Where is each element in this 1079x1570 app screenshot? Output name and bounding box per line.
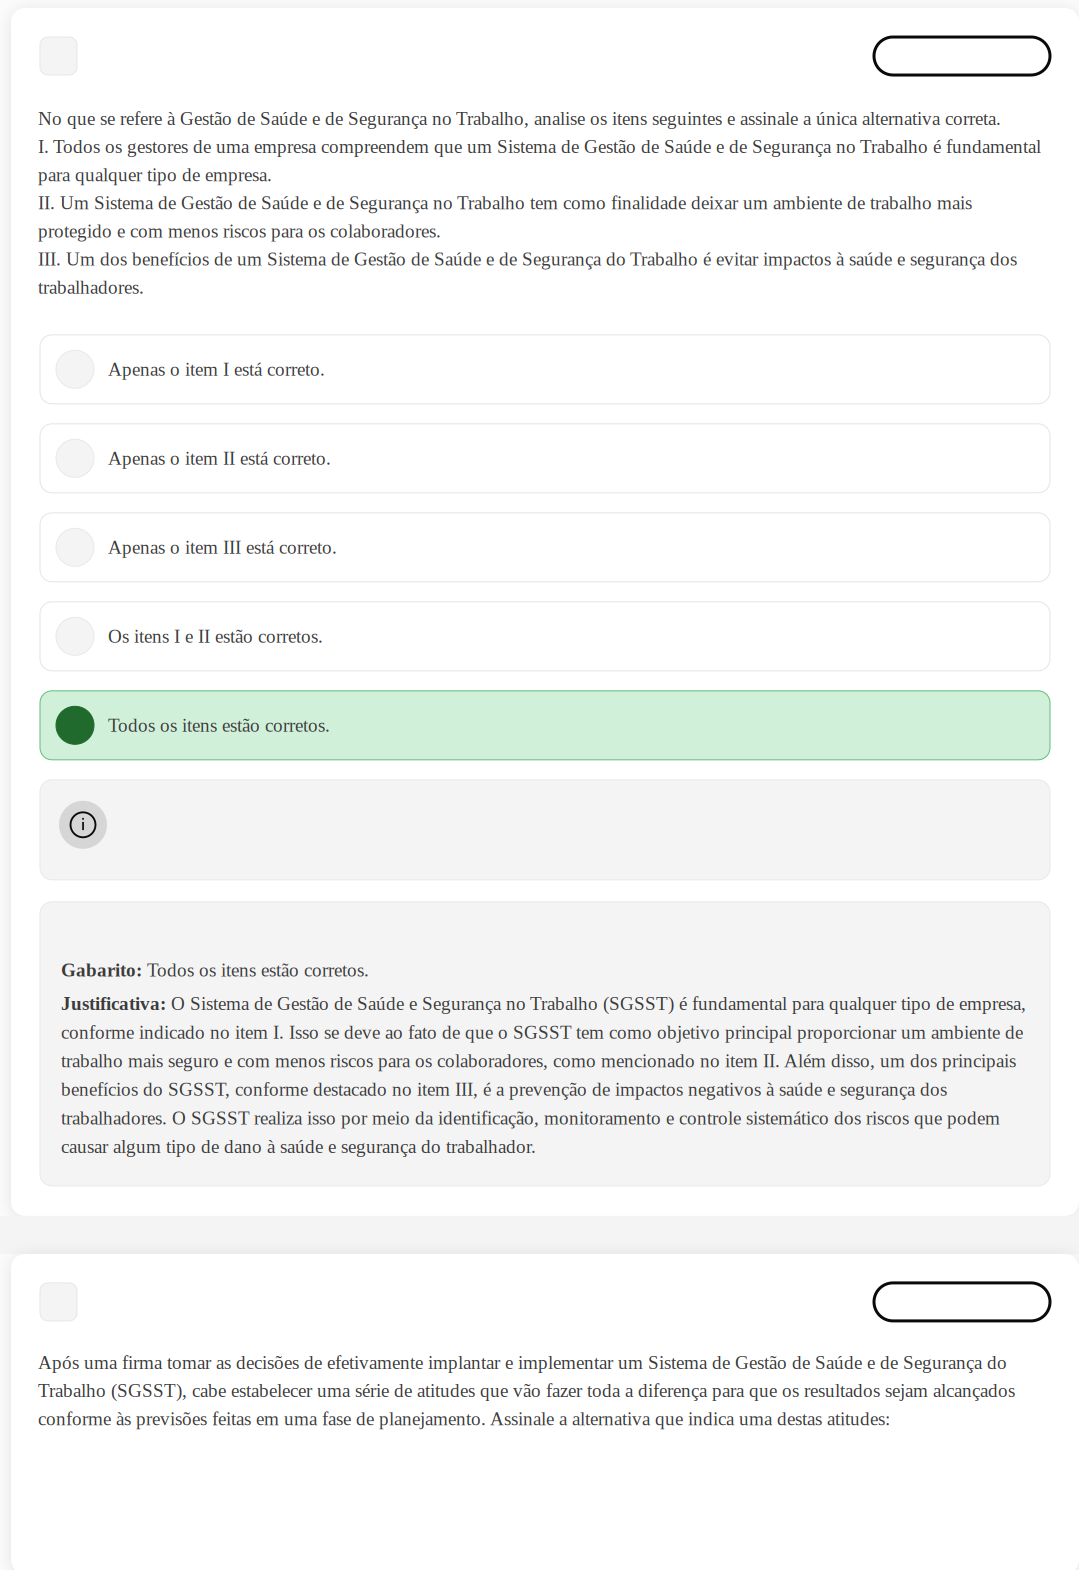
staticText: Apenas o item II está correto.: [108, 448, 331, 469]
staticText: Após uma firma tomar as decisões de efet…: [38, 1352, 1015, 1429]
staticText: Gabarito: Todos os itens estão corretos.: [61, 960, 369, 980]
button[interactable]: Apenas o item I está correto.: [40, 335, 1050, 404]
staticText: Apenas o item I está correto.: [108, 359, 325, 380]
button[interactable]: Os itens I e II estão corretos.: [40, 602, 1050, 671]
button[interactable]: Status da resposta: [874, 1283, 1050, 1321]
staticText: Todos os itens estão corretos.: [108, 715, 330, 736]
button[interactable]: Informação: [40, 780, 1050, 880]
button[interactable]: Todos os itens estão corretos.: [40, 691, 1050, 760]
staticText: Apenas o item III está correto.: [108, 537, 337, 558]
button[interactable]: Status da resposta: [874, 37, 1050, 75]
staticText: No que se refere à Gestão de Saúde e de …: [38, 108, 1041, 298]
button[interactable]: Apenas o item III está correto.: [40, 513, 1050, 582]
button[interactable]: Apenas o item II está correto.: [40, 424, 1050, 493]
staticText: Os itens I e II estão corretos.: [108, 626, 323, 647]
staticText: Justificativa: O Sistema de Gestão de Sa…: [61, 993, 1026, 1157]
